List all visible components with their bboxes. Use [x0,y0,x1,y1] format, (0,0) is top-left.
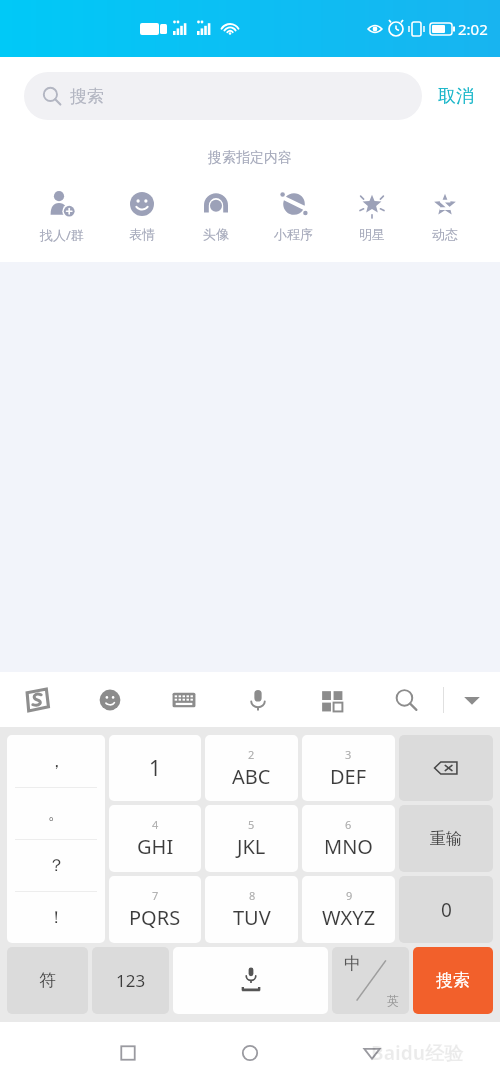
button[interactable]: ， [7,735,105,943]
button[interactable]: 动态 [426,189,464,242]
button[interactable]: 4 [109,805,201,872]
button[interactable]: 9 [302,876,395,943]
button[interactable]: Recent apps [100,1025,156,1081]
button[interactable]: 2 [205,735,298,801]
staticText: 中 [344,953,361,974]
button[interactable]: 头像 [197,189,235,242]
staticText: WXYZ [322,904,376,931]
staticText: 1 [149,754,162,783]
staticText: 123 [116,969,146,992]
button[interactable]: More tools [295,672,369,727]
staticText: 表情 [129,226,155,242]
button[interactable]: Search [369,672,443,727]
button[interactable]: 符 [7,947,88,1014]
staticText: 英 [387,993,399,1008]
button[interactable]: Backspace [399,735,493,801]
button[interactable]: 小程序 [270,189,317,242]
button[interactable]: 1 [109,735,201,801]
button[interactable]: Back [344,1025,400,1081]
button[interactable]: Hide keyboard [444,672,500,727]
staticText: 明星 [359,226,385,242]
staticText: ？ [48,855,65,876]
button[interactable]: Voice input [221,672,295,727]
button[interactable]: Home [222,1025,278,1081]
button[interactable]: 123 [92,947,169,1014]
button[interactable]: Space, voice input [173,947,328,1014]
staticText: 2 [248,747,255,762]
button[interactable]: 搜索 [24,72,422,120]
staticText: ， [48,751,65,772]
button[interactable]: Emoji [73,672,147,727]
button[interactable]: 表情 [123,189,161,242]
button[interactable]: 找人/群 [36,189,88,244]
staticText: 0 [441,897,452,923]
staticText: Baidu经验 [371,1040,464,1066]
staticText: GHI [137,833,174,860]
staticText: PQRS [129,904,181,931]
button[interactable]: 搜索 [413,947,493,1014]
button[interactable]: 3 [302,735,395,801]
staticText: 头像 [203,226,229,242]
button[interactable]: 取消 [422,77,476,116]
staticText: 动态 [432,226,458,242]
staticText: 6 [345,817,352,832]
staticText: 小程序 [274,226,313,242]
staticText: 。 [48,803,65,824]
button[interactable]: Keyboard layout [147,672,221,727]
staticText: 搜索 [436,970,470,991]
button[interactable]: Sogou input [0,672,73,727]
staticText: ！ [48,907,65,928]
staticText: ABC [232,763,271,790]
button[interactable]: 7 [109,876,201,943]
button[interactable]: 5 [205,805,298,872]
staticText: 4 [152,817,159,832]
staticText: 8 [249,888,256,903]
staticText: JKL [237,833,266,860]
staticText: 3 [345,747,352,762]
staticText: 7 [152,888,159,903]
staticText: 重输 [430,829,462,849]
staticText: 搜索 [70,86,104,107]
staticText: 取消 [438,85,474,108]
button[interactable]: 0 [399,876,493,943]
button[interactable]: 重输 [399,805,493,872]
staticText: TUV [233,904,271,931]
staticText: 9 [346,888,353,903]
button[interactable]: 明星 [353,189,391,242]
staticText: 符 [39,970,56,991]
staticText: 5 [248,817,255,832]
staticText: DEF [330,763,367,790]
staticText: 找人/群 [40,226,84,244]
staticText: MNO [324,833,373,860]
button[interactable]: 6 [302,805,395,872]
staticText: 2:02 [458,19,488,39]
button[interactable]: Chinese English toggle [332,947,409,1014]
staticText: 搜索指定内容 [0,149,500,167]
button[interactable]: 8 [205,876,298,943]
